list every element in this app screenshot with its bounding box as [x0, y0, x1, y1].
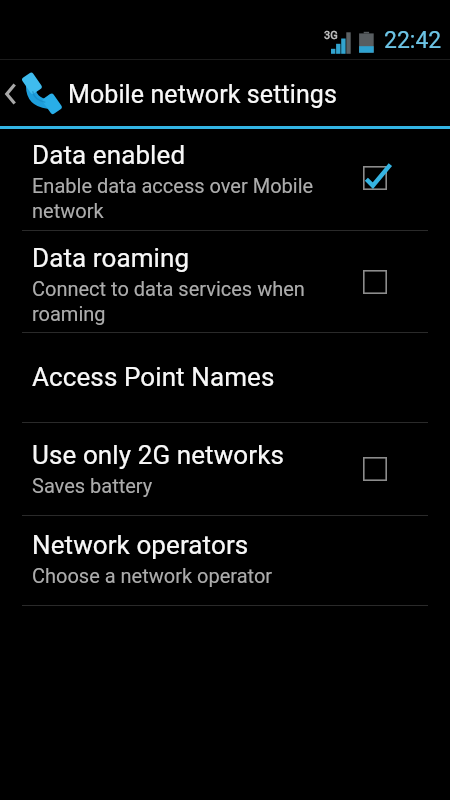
staticText: Use only 2G networks: [32, 440, 284, 470]
staticText: Connect to data services when roaming: [32, 277, 305, 326]
staticText: Enable data access over Mobile network: [32, 174, 314, 223]
staticText: Network operators: [32, 530, 249, 560]
button[interactable]: Use only 2G networks: [0, 423, 450, 515]
staticText: 22:42: [384, 27, 442, 54]
button[interactable]: Toggle Data enabled: [355, 158, 395, 198]
button[interactable]: Network operators: [0, 516, 450, 605]
button[interactable]: Data roaming: [0, 231, 450, 332]
staticText: Mobile network settings: [68, 80, 338, 109]
button[interactable]: Back: [0, 60, 450, 126]
staticText: Data enabled: [32, 140, 186, 170]
button[interactable]: Data enabled: [0, 129, 450, 230]
button[interactable]: Access Point Names: [0, 333, 450, 422]
staticText: Access Point Names: [32, 362, 275, 392]
button[interactable]: Toggle Data roaming: [355, 262, 395, 302]
staticText: Choose a network operator: [32, 564, 273, 587]
staticText: Saves battery: [32, 474, 153, 497]
button[interactable]: Toggle Use only 2G networks: [355, 449, 395, 489]
staticText: Data roaming: [32, 243, 190, 273]
staticText: 3G: [324, 29, 338, 42]
